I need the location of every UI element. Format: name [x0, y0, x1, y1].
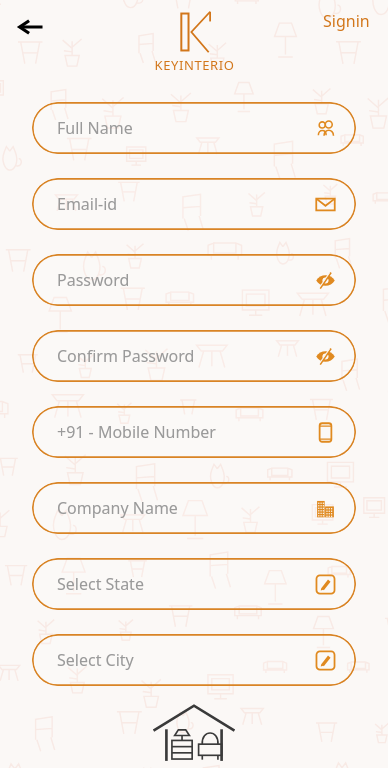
- staticText: Full Name: [57, 117, 133, 139]
- button[interactable]: Back: [10, 6, 52, 48]
- staticText: Password: [57, 269, 130, 291]
- other: Contacts: [315, 118, 336, 139]
- staticText: Signin: [323, 10, 370, 32]
- button[interactable]: +91 - Mobile Number: [32, 406, 356, 458]
- button[interactable]: Select State: [32, 558, 356, 610]
- other: Email: [315, 194, 336, 215]
- staticText: Confirm Password: [57, 345, 195, 367]
- button[interactable]: Select City: [32, 634, 356, 686]
- staticText: Select City: [57, 649, 134, 671]
- other: Company: [315, 498, 336, 519]
- button[interactable]: Email-id: [32, 178, 356, 230]
- staticText: Select State: [57, 573, 144, 595]
- staticText: Email-id: [57, 193, 118, 215]
- other: Show confirm password: [315, 346, 336, 367]
- button[interactable]: Confirm Password: [32, 330, 356, 382]
- other: Select state: [315, 574, 336, 595]
- staticText: Company Name: [57, 497, 178, 519]
- button[interactable]: Password: [32, 254, 356, 306]
- button[interactable]: Company Name: [32, 482, 356, 534]
- other: Mobile: [315, 422, 336, 443]
- button[interactable]: Signin: [315, 6, 378, 36]
- staticText: KEYINTERIO: [154, 56, 235, 74]
- other: Select city: [315, 650, 336, 671]
- button[interactable]: Full Name: [32, 102, 356, 154]
- staticText: +91 - Mobile Number: [57, 421, 216, 443]
- other: Show password: [315, 270, 336, 291]
